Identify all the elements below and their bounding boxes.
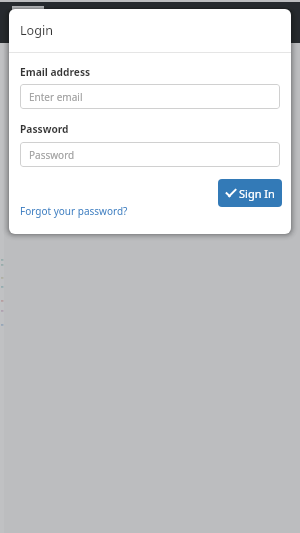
staticText: Enter email <box>29 90 83 104</box>
staticText: Forgot your password? <box>20 204 128 218</box>
staticText: Password <box>29 148 75 162</box>
button[interactable]: Sign In <box>218 179 282 207</box>
button[interactable]: Forgot your password? <box>20 203 128 218</box>
staticText: Login <box>20 22 53 39</box>
staticText: Email address <box>20 65 91 79</box>
button[interactable]: Password <box>20 142 280 167</box>
staticText: Sign In <box>239 186 275 201</box>
staticText: Password <box>20 122 69 136</box>
button[interactable]: Enter email <box>20 84 280 109</box>
